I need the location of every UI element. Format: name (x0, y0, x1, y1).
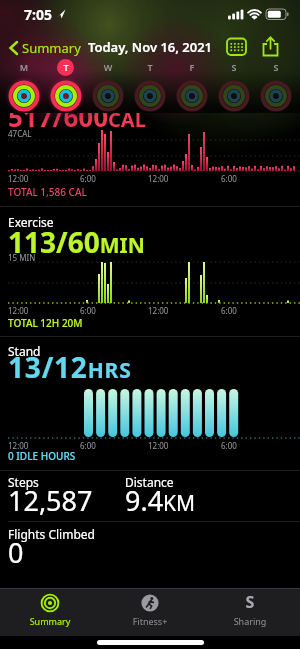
staticText: Sharing (210, 615, 290, 627)
staticText: Fitness+ (110, 615, 190, 627)
staticText: S (266, 61, 286, 73)
staticText: 6:00 (221, 440, 237, 451)
staticText: 113/60MIN (8, 223, 145, 261)
staticText: Flights Climbed (8, 526, 95, 542)
staticText: T (56, 61, 76, 73)
staticText: 12:00 (148, 305, 169, 316)
staticText: TOTAL 12H 20M (8, 316, 83, 330)
staticText: 13/12HRS (8, 348, 132, 386)
staticText: 6:00 (80, 305, 96, 316)
staticText: 12:00 (8, 173, 29, 184)
staticText: Stand (8, 343, 41, 359)
staticText: 9.4KM (125, 482, 196, 519)
staticText: 6:00 (221, 305, 237, 316)
staticText: 12:00 (8, 305, 29, 316)
staticText: Summary (22, 39, 81, 57)
button[interactable] (226, 37, 248, 57)
staticText: 12,587 (8, 482, 93, 519)
staticText: 6:00 (80, 173, 96, 184)
staticText: S (224, 61, 244, 73)
staticText: 15 MIN (8, 252, 36, 263)
staticText: W (98, 61, 118, 73)
staticText: TOTAL 1,586 CAL (8, 185, 87, 199)
staticText: 7:05 (24, 5, 52, 24)
button[interactable] (261, 36, 281, 57)
staticText: 0 (8, 534, 24, 571)
staticText: F (182, 61, 202, 73)
staticText: Exercise (8, 214, 54, 230)
button[interactable]: Summary (10, 590, 90, 634)
button[interactable]: S (210, 590, 290, 634)
staticText: S (210, 591, 290, 613)
staticText: Summary (10, 615, 90, 627)
staticText: Distance (125, 474, 174, 490)
staticText: 47CAL (8, 128, 32, 139)
staticText: 6:00 (221, 173, 237, 184)
staticText: 12:00 (148, 173, 169, 184)
staticText: 12:00 (148, 440, 169, 451)
staticText: 517/600CAL (8, 99, 146, 134)
staticText: 6:00 (80, 440, 96, 451)
staticText: Steps (8, 474, 39, 490)
staticText: 0 IDLE HOURS (8, 449, 76, 463)
button[interactable]: Fitness+ (110, 590, 190, 634)
button[interactable]: Summary (6, 38, 81, 58)
staticText: 12:00 (8, 440, 29, 451)
staticText: M (14, 61, 34, 73)
staticText: Today, Nov 16, 2021 (0, 38, 300, 56)
staticText: T (140, 61, 160, 73)
